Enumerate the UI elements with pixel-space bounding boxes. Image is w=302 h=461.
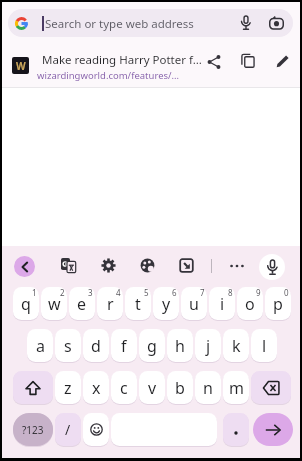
button[interactable]: k xyxy=(223,329,249,362)
button[interactable] xyxy=(251,371,291,404)
button[interactable]: p xyxy=(265,287,291,320)
button[interactable] xyxy=(229,258,245,274)
staticText: v xyxy=(148,377,157,399)
button[interactable]: c xyxy=(111,371,137,404)
staticText: l xyxy=(262,335,267,357)
staticText: 5 xyxy=(144,287,149,298)
staticText: 0 xyxy=(284,287,289,298)
staticText: g xyxy=(147,335,157,357)
staticText: / xyxy=(65,420,71,439)
button[interactable]: e xyxy=(69,287,95,320)
button[interactable]: j xyxy=(195,329,221,362)
button[interactable]: x xyxy=(83,371,109,404)
button[interactable] xyxy=(111,413,217,446)
button[interactable]: q xyxy=(13,287,39,320)
staticText: t xyxy=(135,293,141,315)
staticText: 2 xyxy=(60,287,65,298)
staticText: y xyxy=(162,293,171,315)
staticText: Search or type web address xyxy=(45,16,194,32)
button[interactable]: Search or type web address xyxy=(8,9,293,37)
staticText: q xyxy=(21,293,31,315)
staticText: ?123 xyxy=(22,423,44,437)
staticText: 7 xyxy=(200,287,205,298)
staticText: o xyxy=(245,293,255,315)
button[interactable]: ?123 xyxy=(13,413,53,446)
staticText: 3 xyxy=(88,287,93,298)
button[interactable]: y xyxy=(153,287,179,320)
staticText: wizardingworld.com/features/… xyxy=(37,69,180,82)
staticText: i xyxy=(220,293,225,315)
button[interactable]: u xyxy=(181,287,207,320)
button[interactable]: n xyxy=(195,371,221,404)
button[interactable]: s xyxy=(55,329,81,362)
button[interactable]: a xyxy=(27,329,53,362)
button[interactable]: f xyxy=(111,329,137,362)
button[interactable]: g xyxy=(139,329,165,362)
button[interactable]: v xyxy=(139,371,165,404)
staticText: u xyxy=(189,293,199,315)
button[interactable]: z xyxy=(55,371,81,404)
button[interactable] xyxy=(140,258,155,273)
button[interactable] xyxy=(61,258,76,273)
button[interactable]: d xyxy=(83,329,109,362)
button[interactable] xyxy=(179,258,194,273)
button[interactable] xyxy=(223,413,249,446)
staticText: 1 xyxy=(32,287,37,298)
staticText: W xyxy=(16,59,26,73)
staticText: 9 xyxy=(256,287,261,298)
staticText: s xyxy=(64,335,72,357)
staticText: 8 xyxy=(228,287,233,298)
button[interactable]: t xyxy=(125,287,151,320)
staticText: k xyxy=(232,335,241,357)
staticText: d xyxy=(91,335,101,357)
button[interactable]: b xyxy=(167,371,193,404)
staticText: x xyxy=(92,377,101,399)
button[interactable] xyxy=(241,54,256,69)
staticText: r xyxy=(107,293,114,315)
staticText: p xyxy=(273,293,283,315)
button[interactable]: h xyxy=(167,329,193,362)
staticText: 4 xyxy=(116,287,121,298)
button[interactable]: l xyxy=(251,329,277,362)
staticText: c xyxy=(120,377,128,399)
staticText: a xyxy=(36,335,45,357)
staticText: n xyxy=(203,377,213,399)
button[interactable] xyxy=(269,16,284,31)
staticText: Make reading Harry Potter f… xyxy=(42,52,202,68)
button[interactable]: / xyxy=(55,413,81,446)
button[interactable] xyxy=(207,55,221,69)
staticText: f xyxy=(121,335,127,357)
staticText: b xyxy=(175,377,185,399)
staticText: m xyxy=(229,377,244,399)
button[interactable] xyxy=(101,258,116,273)
button[interactable] xyxy=(83,413,109,446)
staticText: e xyxy=(77,293,87,315)
button[interactable]: W xyxy=(2,44,300,88)
button[interactable] xyxy=(259,254,285,280)
button[interactable]: w xyxy=(41,287,67,320)
staticText: h xyxy=(175,335,185,357)
staticText: w xyxy=(48,293,61,315)
button[interactable]: o xyxy=(237,287,263,320)
button[interactable] xyxy=(239,16,253,30)
button[interactable] xyxy=(14,256,35,277)
staticText: z xyxy=(64,377,72,399)
button[interactable] xyxy=(253,413,293,446)
staticText: 6 xyxy=(172,287,177,298)
staticText: j xyxy=(206,335,211,357)
button[interactable] xyxy=(276,54,290,68)
button[interactable]: i xyxy=(209,287,235,320)
button[interactable] xyxy=(13,371,53,404)
button[interactable]: r xyxy=(97,287,123,320)
button[interactable]: m xyxy=(223,371,249,404)
